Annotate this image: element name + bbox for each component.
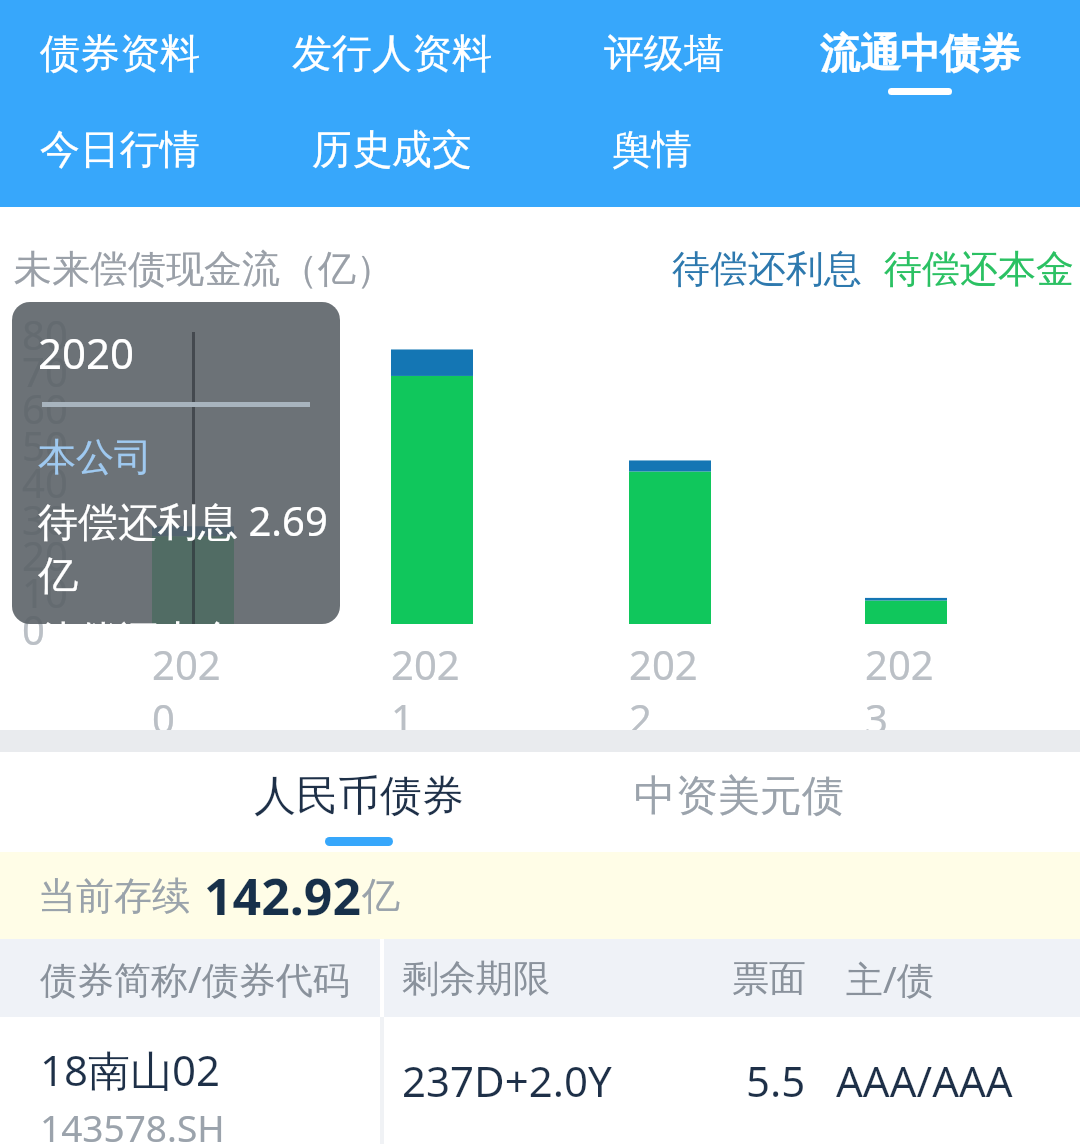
- staticText: 本公司: [38, 433, 152, 481]
- staticText: 80: [22, 307, 68, 361]
- staticText: 5.5: [746, 1052, 806, 1109]
- staticText: 未来偿债现金流（亿）: [14, 245, 394, 293]
- button[interactable]: 发行人资料: [288, 26, 496, 80]
- staticText: 40: [22, 455, 68, 509]
- button[interactable]: 中资美元债: [628, 770, 850, 823]
- staticText: 待偿还本金: [884, 245, 1074, 293]
- staticText: 舆情: [612, 124, 692, 174]
- button[interactable]: 待偿还利息: [672, 245, 862, 293]
- staticText: 债券简称/债券代码: [40, 953, 350, 1004]
- button[interactable]: 债券资料: [36, 26, 204, 80]
- staticText: 亿: [362, 872, 400, 920]
- button[interactable]: 舆情: [608, 122, 696, 176]
- staticText: 18南山02: [40, 1041, 221, 1098]
- staticText: 143578.SH: [40, 1102, 225, 1144]
- staticText: 142.92: [204, 862, 362, 930]
- staticText: 待偿还利息: [672, 245, 862, 293]
- staticText: 0: [22, 602, 45, 656]
- staticText: 发行人资料: [292, 28, 492, 78]
- staticText: 待偿还利息 2.69亿: [38, 493, 340, 601]
- staticText: 50: [22, 418, 68, 472]
- staticText: 中资美元债: [634, 770, 844, 823]
- button[interactable]: 人民币债券: [248, 770, 470, 846]
- staticText: 流通中债券: [820, 28, 1020, 78]
- staticText: 主/债: [846, 953, 934, 1004]
- staticText: 待偿还本金 23.9亿: [38, 611, 340, 624]
- staticText: 70: [22, 344, 68, 398]
- button[interactable]: 18南山02: [0, 1017, 1080, 1144]
- staticText: 2023: [865, 637, 947, 745]
- staticText: 评级墙: [604, 28, 724, 78]
- staticText: 10: [22, 565, 68, 619]
- staticText: 237D+2.0Y: [402, 1052, 612, 1109]
- staticText: 2020: [152, 637, 234, 745]
- button[interactable]: 评级墙: [600, 26, 728, 80]
- button[interactable]: 今日行情: [36, 122, 204, 176]
- staticText: 20: [22, 528, 68, 582]
- button[interactable]: 流通中债券: [816, 26, 1024, 97]
- staticText: 2020: [38, 324, 135, 381]
- staticText: 当前存续: [38, 872, 190, 920]
- button[interactable]: 待偿还本金: [884, 245, 1074, 293]
- staticText: 历史成交: [312, 124, 472, 174]
- staticText: 票面: [732, 955, 806, 1002]
- staticText: 2021: [391, 637, 473, 745]
- staticText: AAA/AAA: [836, 1052, 1013, 1109]
- staticText: 今日行情: [40, 124, 200, 174]
- staticText: 2022: [629, 637, 711, 745]
- staticText: 剩余期限: [402, 955, 550, 1002]
- staticText: 30: [22, 492, 68, 546]
- staticText: 60: [22, 381, 68, 435]
- button[interactable]: 历史成交: [308, 122, 476, 176]
- staticText: 债券资料: [40, 28, 200, 78]
- staticText: 人民币债券: [254, 770, 464, 823]
